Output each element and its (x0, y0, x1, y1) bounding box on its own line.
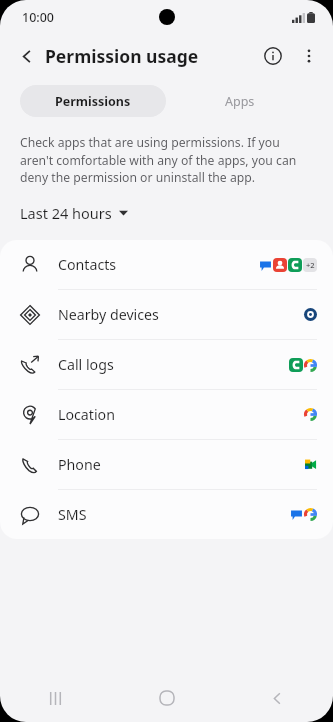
staticText: Call logs (58, 355, 114, 374)
button[interactable]: Recents (0, 674, 111, 722)
staticText: Permissions (55, 93, 131, 110)
button[interactable]: Back (10, 39, 44, 73)
button[interactable]: Home (111, 674, 222, 722)
staticText: 10:00 (22, 9, 55, 26)
staticText: Apps (225, 93, 255, 110)
button[interactable]: Information (255, 38, 291, 74)
button[interactable]: More options (291, 38, 327, 74)
button[interactable]: Permissions (20, 85, 166, 117)
staticText: Location (58, 405, 115, 424)
button[interactable]: Location (0, 390, 333, 439)
button[interactable]: Last 24 hours (16, 199, 132, 227)
staticText: Contacts (58, 255, 117, 274)
button[interactable]: SMS (0, 490, 333, 539)
staticText: Permission usage (45, 44, 199, 68)
staticText: Phone (58, 455, 101, 474)
staticText: Nearby devices (58, 305, 159, 324)
staticText: SMS (58, 505, 87, 524)
button[interactable]: Call logs (0, 340, 333, 389)
button[interactable]: Apps (166, 85, 313, 117)
button[interactable]: Nearby devices (0, 290, 333, 339)
button[interactable]: Phone (0, 440, 333, 489)
staticText: +2 (306, 260, 315, 270)
button[interactable]: Back (222, 674, 333, 722)
button[interactable]: Contacts (0, 240, 333, 289)
staticText: Check apps that are using permissions. I… (20, 134, 313, 185)
staticText: Last 24 hours (20, 203, 112, 223)
